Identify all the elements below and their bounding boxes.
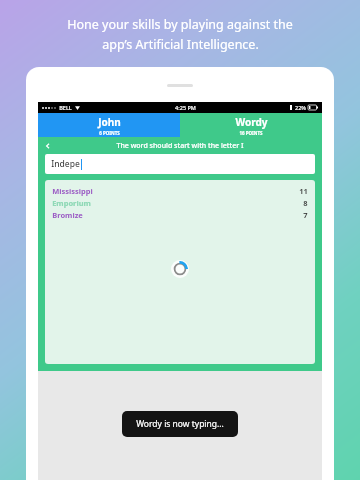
staticText: Wordy xyxy=(235,115,268,129)
staticText: Bromize xyxy=(52,210,83,220)
staticText: Mississippi xyxy=(52,186,93,196)
staticText: Wordy is now typing... xyxy=(136,418,224,430)
button[interactable]: Bromize xyxy=(52,210,308,220)
staticText: 6 POINTS xyxy=(99,130,120,136)
button[interactable]: Mississippi xyxy=(52,186,308,196)
staticText: Emporium xyxy=(52,198,91,208)
staticText: BELL xyxy=(59,104,72,111)
staticText: 4:25 PM xyxy=(175,104,196,111)
staticText: John xyxy=(98,115,121,129)
button[interactable]: Wordy is now typing... xyxy=(122,411,238,437)
staticText: Indepe xyxy=(51,158,80,170)
button[interactable]: Indepe xyxy=(45,154,315,174)
button[interactable]: Wordy xyxy=(180,113,322,137)
button[interactable]: John xyxy=(38,113,180,137)
button[interactable]: Back xyxy=(38,137,58,154)
staticText: The word should start with the letter I xyxy=(116,141,244,151)
button[interactable]: Emporium xyxy=(52,198,308,208)
staticText: 7 xyxy=(303,210,308,220)
staticText: Hone your skills by playing against the xyxy=(67,16,293,33)
staticText: 22% xyxy=(295,104,306,111)
staticText: 16 POINTS xyxy=(239,130,263,136)
staticText: 8 xyxy=(303,198,308,208)
staticText: 11 xyxy=(299,186,308,196)
staticText: app’s Artificial Intelligence. xyxy=(102,36,259,53)
